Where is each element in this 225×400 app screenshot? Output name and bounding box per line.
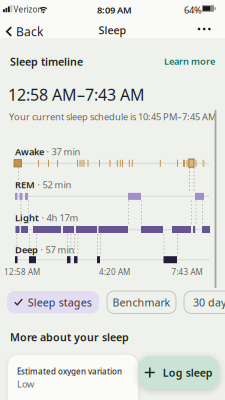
staticText: 30 day av xyxy=(193,295,225,309)
button[interactable]: Sleep stages xyxy=(7,291,99,313)
staticText: · 4h 17m xyxy=(41,211,78,224)
staticText: · 57 min xyxy=(40,243,74,256)
staticText: 8:09 AM xyxy=(97,4,132,16)
staticText: 4:20 AM xyxy=(99,266,130,277)
staticText: REM xyxy=(15,178,35,191)
button[interactable]: More options xyxy=(190,18,218,40)
staticText: Deep xyxy=(15,243,38,256)
staticText: Back xyxy=(16,23,43,39)
button[interactable]: Log sleep xyxy=(138,356,219,389)
staticText: Log sleep xyxy=(163,365,213,380)
staticText: 12:58 AM xyxy=(4,266,40,277)
staticText: 12:58 AM–7:43 AM xyxy=(8,84,145,105)
staticText: Sleep xyxy=(98,23,126,37)
staticText: Awake xyxy=(15,145,44,158)
button[interactable]: Learn more xyxy=(161,52,218,70)
staticText: Sleep timeline xyxy=(10,54,83,69)
staticText: More about your sleep xyxy=(10,330,129,344)
staticText: Your current sleep schedule is 10:45 PM–… xyxy=(9,110,216,123)
staticText: Verizon xyxy=(13,4,42,15)
staticText: Sleep stages xyxy=(28,295,92,309)
staticText: · 37 min xyxy=(46,145,80,158)
button[interactable]: Benchmark xyxy=(107,291,176,313)
staticText: Estimated oxygen variation xyxy=(17,366,122,377)
staticText: · 52 min xyxy=(37,178,71,191)
button[interactable]: Back xyxy=(0,19,51,43)
staticText: 64% xyxy=(184,4,202,16)
staticText: 7:43 AM xyxy=(171,266,202,277)
staticText: Light xyxy=(15,211,39,224)
staticText: Benchmark xyxy=(112,295,170,309)
staticText: Learn more xyxy=(164,55,215,67)
button[interactable]: 30 day av xyxy=(184,291,225,313)
button[interactable]: Estimated oxygen variation xyxy=(8,355,138,400)
staticText: Low xyxy=(17,378,34,390)
